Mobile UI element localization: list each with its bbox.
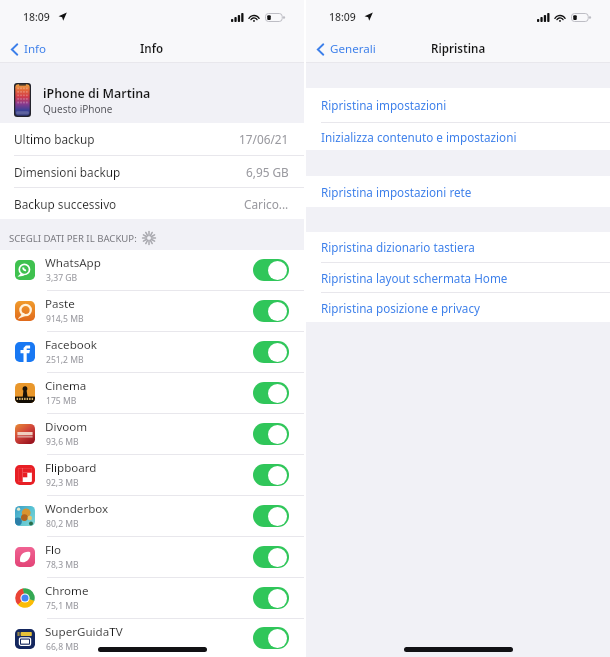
staticText: Ripristina impostazioni rete: [321, 184, 472, 200]
button[interactable]: Ripristina impostazioni: [306, 88, 610, 122]
staticText: Info: [24, 41, 47, 57]
staticText: Carico...: [244, 196, 289, 212]
button[interactable]: Inizializza contenuto e impostazioni: [306, 123, 610, 150]
button[interactable]: Dimensioni backup: [0, 156, 304, 187]
staticText: SCEGLI DATI PER IL BACKUP:: [9, 232, 137, 245]
staticText: 78,3 MB: [46, 559, 79, 571]
staticText: Cinema: [45, 378, 87, 394]
button[interactable]: WhatsApp: [0, 250, 304, 290]
staticText: Ultimo backup: [14, 131, 95, 147]
staticText: Paste: [45, 296, 75, 312]
button[interactable]: Ripristina dizionario tastiera: [306, 232, 610, 262]
button[interactable]: Paste: [0, 291, 304, 331]
staticText: 17/06/21: [239, 131, 289, 147]
staticText: 93,6 MB: [46, 436, 79, 448]
button[interactable]: Ultimo backup: [0, 123, 304, 155]
staticText: Ripristina posizione e privacy: [321, 300, 480, 316]
staticText: Inizializza contenuto e impostazioni: [321, 129, 517, 145]
staticText: 6,95 GB: [246, 164, 289, 180]
staticText: Ripristina: [431, 41, 486, 57]
staticText: Questo iPhone: [43, 102, 113, 116]
staticText: Info: [140, 41, 164, 57]
staticText: 92,3 MB: [46, 477, 79, 489]
staticText: Backup successivo: [14, 196, 117, 212]
staticText: Facebook: [45, 337, 97, 353]
staticText: iPhone di Martina: [43, 85, 151, 102]
staticText: Flipboard: [45, 460, 97, 476]
button[interactable]: Ripristina posizione e privacy: [306, 293, 610, 322]
button[interactable]: Backup toggle: [253, 259, 289, 281]
button[interactable]: Chrome: [0, 578, 304, 618]
button[interactable]: Backup toggle: [253, 546, 289, 568]
staticText: SuperGuidaTV: [45, 624, 123, 640]
staticText: Chrome: [45, 583, 89, 599]
staticText: 3,37 GB: [46, 272, 78, 284]
button[interactable]: SuperGuidaTV: [0, 619, 304, 657]
button[interactable]: Generali: [306, 38, 384, 60]
staticText: Divoom: [45, 419, 88, 435]
staticText: 66,8 MB: [46, 641, 79, 653]
staticText: 75,1 MB: [46, 600, 79, 612]
button[interactable]: Flo: [0, 537, 304, 577]
staticText: 80,2 MB: [46, 518, 79, 530]
button[interactable]: Backup toggle: [253, 627, 289, 649]
button[interactable]: Ripristina layout schermata Home: [306, 263, 610, 292]
button[interactable]: Wonderbox: [0, 496, 304, 536]
staticText: Ripristina impostazioni: [321, 97, 447, 113]
staticText: Generali: [330, 41, 376, 57]
staticText: 914,5 MB: [46, 313, 84, 325]
button[interactable]: Backup toggle: [253, 464, 289, 486]
button[interactable]: Backup toggle: [253, 341, 289, 363]
button[interactable]: Backup toggle: [253, 505, 289, 527]
button[interactable]: Backup toggle: [253, 587, 289, 609]
staticText: Dimensioni backup: [14, 164, 121, 180]
staticText: Ripristina layout schermata Home: [321, 270, 508, 286]
staticText: WhatsApp: [45, 255, 101, 271]
button[interactable]: Facebook: [0, 332, 304, 372]
button[interactable]: Flipboard: [0, 455, 304, 495]
staticText: 18:09: [23, 10, 50, 24]
button[interactable]: Backup toggle: [253, 382, 289, 404]
button[interactable]: Backup successivo: [0, 188, 304, 219]
button[interactable]: Ripristina impostazioni rete: [306, 176, 610, 207]
button[interactable]: Divoom: [0, 414, 304, 454]
staticText: Flo: [45, 542, 62, 558]
staticText: 18:09: [329, 10, 356, 24]
button[interactable]: Backup toggle: [253, 300, 289, 322]
button[interactable]: Info: [0, 38, 55, 60]
staticText: Ripristina dizionario tastiera: [321, 239, 475, 255]
button[interactable]: Cinema: [0, 373, 304, 413]
staticText: 251,2 MB: [46, 354, 84, 366]
staticText: Wonderbox: [45, 501, 109, 517]
button[interactable]: Backup toggle: [253, 423, 289, 445]
staticText: 175 MB: [46, 395, 77, 407]
